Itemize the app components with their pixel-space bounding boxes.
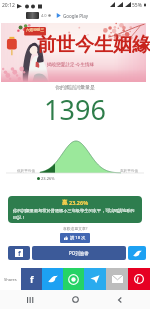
button[interactable]: Twitter <box>128 246 146 260</box>
button[interactable]: 贏 <box>8 196 142 223</box>
button[interactable]: WhatsApp <box>63 268 84 290</box>
staticText: 你的國語詞彙量是 <box>0 84 150 90</box>
staticText: 讚 18 次 <box>70 235 86 241</box>
staticText: 23.26% <box>69 199 89 206</box>
staticText: f <box>30 273 34 285</box>
button[interactable]: Back <box>105 290 135 309</box>
staticText: 20:12 <box>2 2 15 9</box>
button[interactable]: 讚 18 次 <box>60 233 90 243</box>
staticText: 前世今生姻緣 <box>37 33 150 57</box>
staticText: 低於平均值 <box>17 169 35 174</box>
staticText: 1396 <box>0 91 150 128</box>
button[interactable]: 六週戀愛三 <box>1 23 146 82</box>
button[interactable]: Facebook <box>8 246 30 260</box>
button[interactable]: Pinterest <box>128 268 150 290</box>
staticText: PO到臉書 <box>69 250 89 256</box>
staticText: 喜歡這篇文章? <box>63 226 88 231</box>
staticText: Shares <box>4 277 17 282</box>
button[interactable]: Email <box>106 268 128 290</box>
staticText: 55% <box>132 2 142 9</box>
staticText: 揭曉戀愛註定·今生情緣 <box>47 61 95 67</box>
staticText: 贏 <box>62 199 68 206</box>
staticText: 高於平均值 <box>120 169 138 174</box>
button[interactable]: Home <box>60 290 90 309</box>
button[interactable]: Telegram <box>84 268 106 290</box>
button[interactable]: Recents <box>15 290 45 309</box>
staticText: 你的詞彙量最相當於普通國小三年級學生的水平，可以閱讀地看的日記！ <box>13 208 137 220</box>
button[interactable]: PO到臉書 <box>32 246 126 260</box>
button[interactable]: Facebook <box>21 268 42 290</box>
staticText: f <box>18 249 21 257</box>
button[interactable]: Twitter <box>42 268 63 290</box>
staticText: 23.26% <box>41 176 55 181</box>
staticText: 4.0 <box>41 13 47 18</box>
staticText: Google Play <box>63 13 89 19</box>
staticText: 六週戀愛三 <box>26 28 44 33</box>
